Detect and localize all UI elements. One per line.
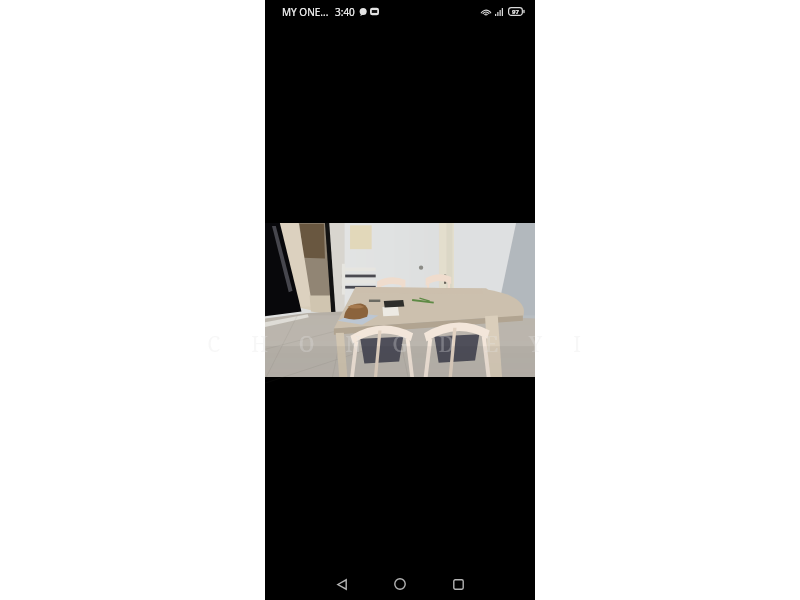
button[interactable]: Recents	[437, 568, 479, 600]
button[interactable]: Home	[379, 568, 421, 600]
staticText: 97	[512, 8, 519, 16]
button[interactable]: Back	[321, 568, 363, 600]
staticText: C H O N G D E Y I	[207, 330, 594, 359]
staticText: C H O N G D E Y I	[207, 330, 594, 359]
staticText: 3:40	[335, 5, 355, 19]
staticText: MY ONE...	[282, 5, 329, 19]
